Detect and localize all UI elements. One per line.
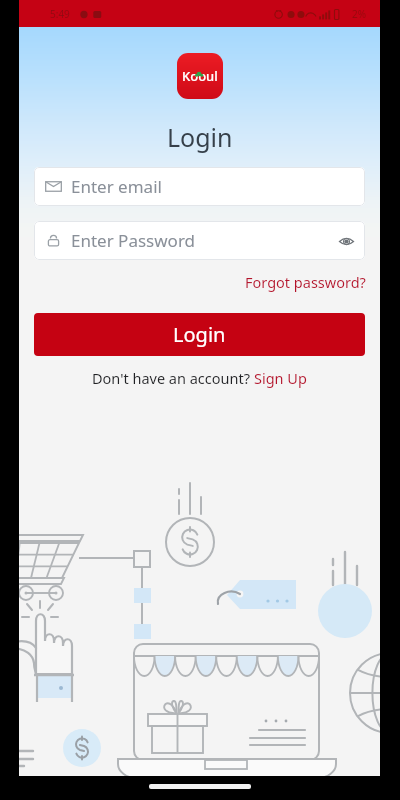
button[interactable]: Show password xyxy=(336,231,356,251)
staticText: Login xyxy=(173,321,226,348)
staticText: Enter email xyxy=(71,175,162,198)
button[interactable]: Kooul logo xyxy=(177,53,223,99)
staticText: Login xyxy=(167,120,233,154)
button[interactable]: Login xyxy=(34,313,365,356)
button[interactable]: Enter Password xyxy=(34,221,365,260)
button[interactable]: Enter email xyxy=(34,167,365,206)
staticText: 5:49 xyxy=(50,7,70,21)
staticText: Don't have an account? xyxy=(92,368,254,388)
button[interactable]: Sign Up xyxy=(254,368,307,388)
staticText: Kooul xyxy=(182,67,218,85)
staticText: 2% xyxy=(352,7,367,21)
staticText: Enter Password xyxy=(71,229,196,252)
button[interactable]: Forgot password? xyxy=(245,272,366,292)
